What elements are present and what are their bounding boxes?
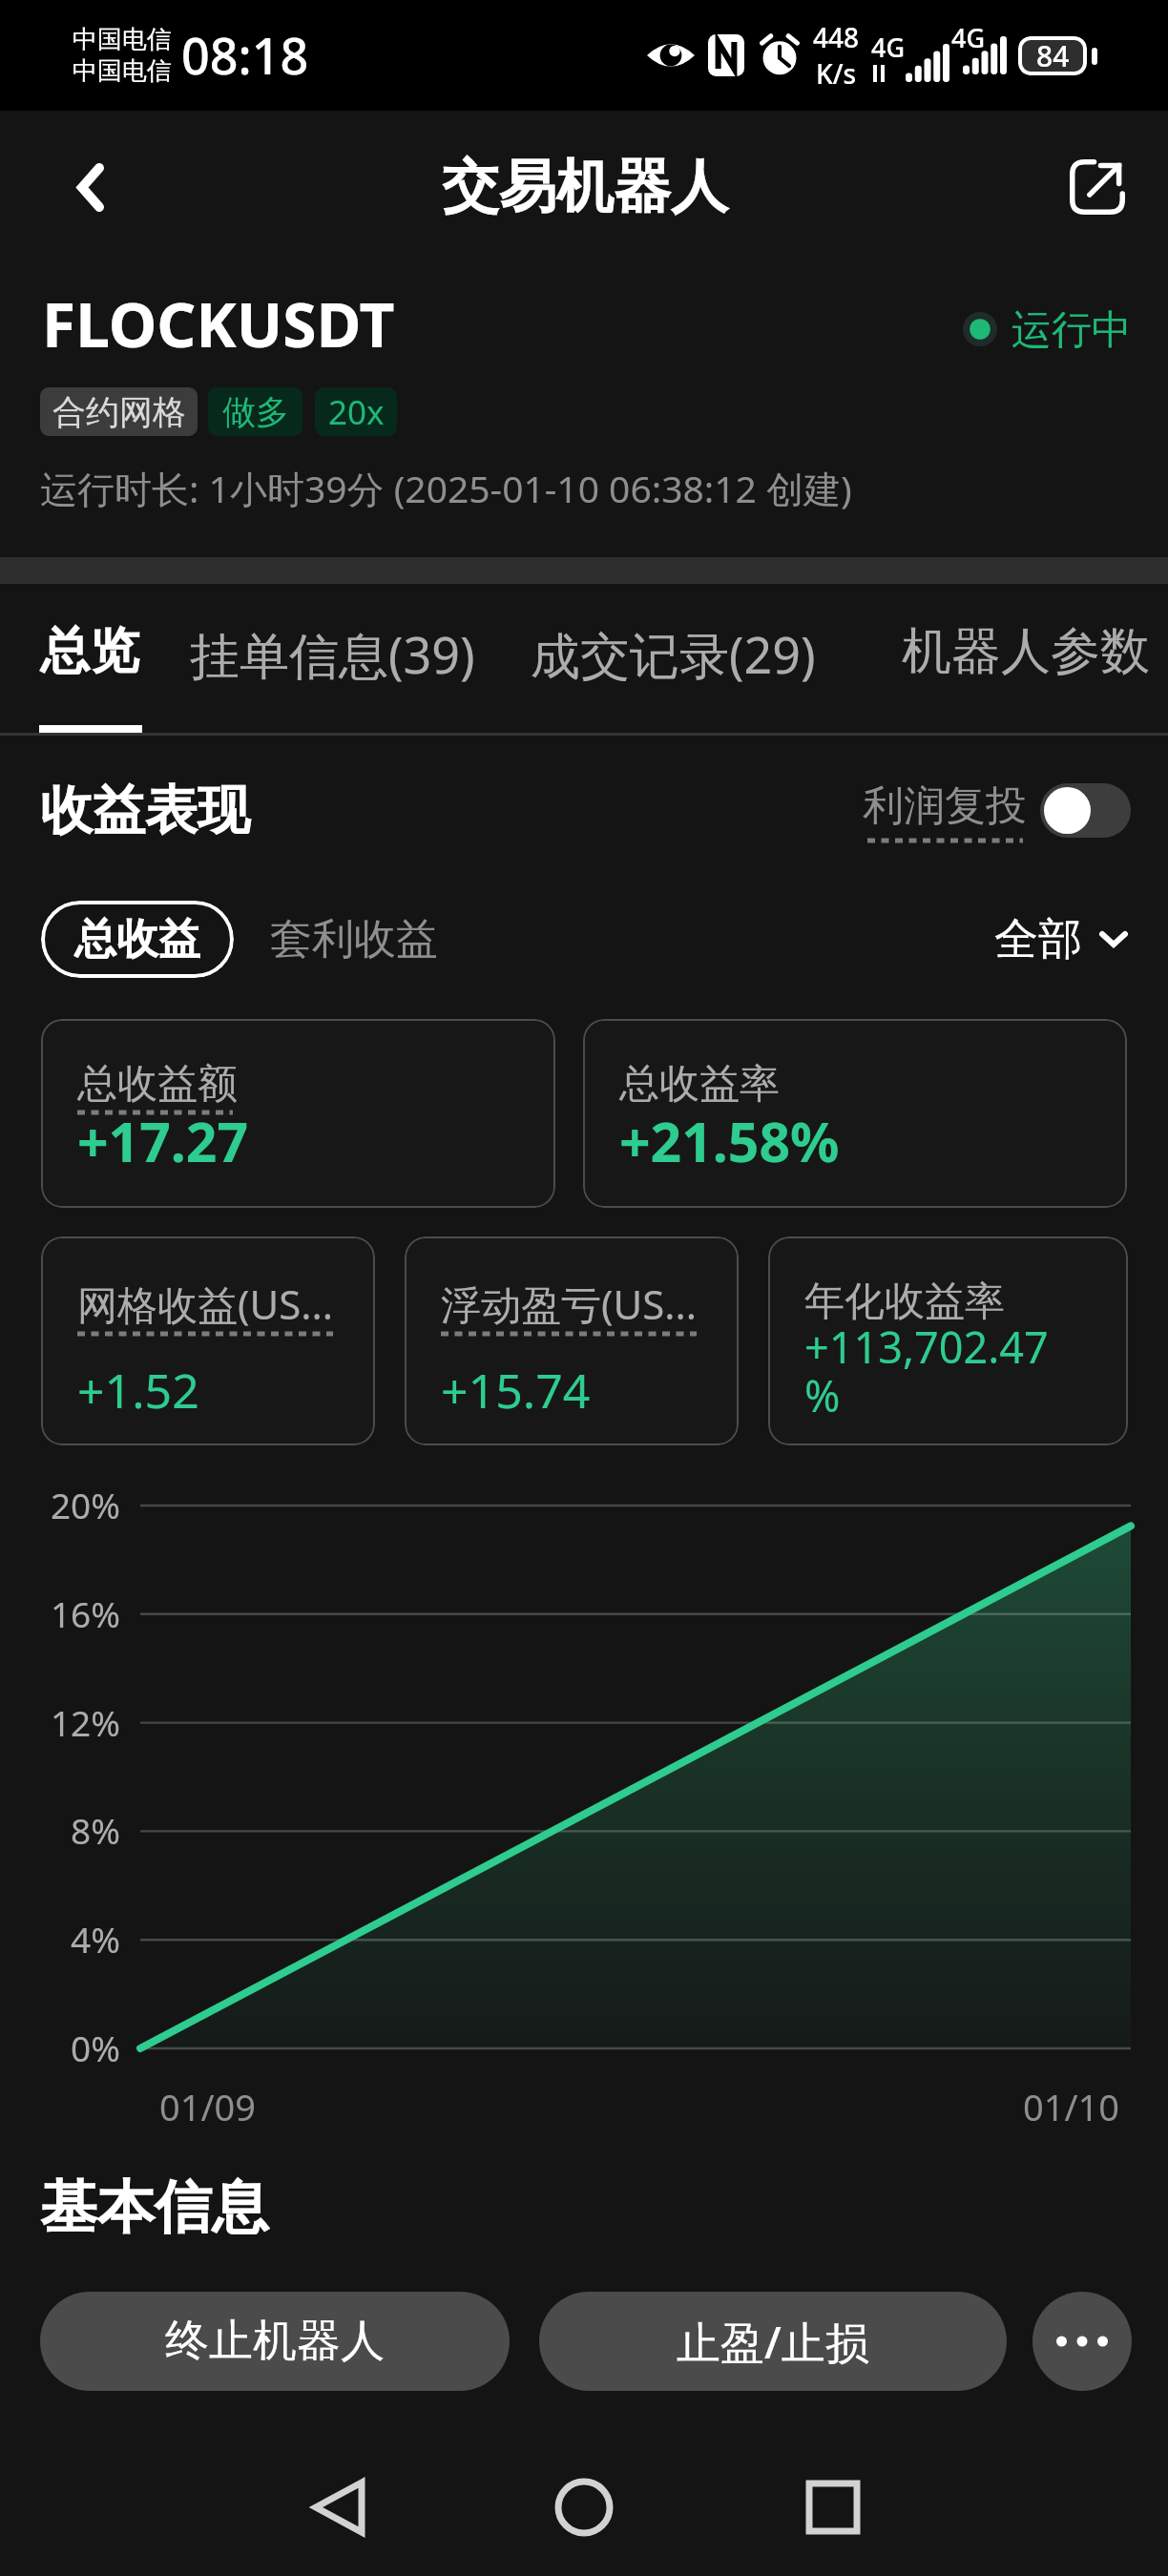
staticText: 总收益 [74, 913, 200, 966]
staticText: 12% [50, 1698, 120, 1746]
staticText: 运行时长: 1小时39分 (2025-01-10 06:38:12 创建) [40, 463, 852, 513]
staticText: 01/10 [1023, 2082, 1120, 2131]
staticText: 总收益率 [619, 1059, 780, 1110]
staticText: 交易机器人 [442, 151, 728, 223]
button[interactable]: Home [527, 2450, 641, 2565]
button[interactable]: More options [1032, 2292, 1132, 2391]
button[interactable]: 全部 [983, 901, 1139, 978]
staticText: 年化收益率 [804, 1277, 1005, 1327]
button[interactable]: 机器人参数 [879, 611, 1168, 693]
button[interactable]: 成交记录(29) [508, 611, 839, 697]
staticText: 终止机器人 [165, 2314, 385, 2369]
staticText: 收益表现 [40, 778, 250, 843]
staticText: +113,702.47% [804, 1318, 1062, 1424]
staticText: K/s [816, 55, 857, 92]
staticText: 8% [71, 1806, 120, 1854]
staticText: 止盈/止损 [677, 2312, 869, 2372]
button[interactable]: 总览 [17, 611, 162, 693]
staticText: +21.58% [619, 1104, 1117, 1178]
staticText: 网格收益(US... [77, 1277, 334, 1331]
button[interactable]: 网格收益(US... [41, 1236, 375, 1445]
button[interactable]: 止盈/止损 [539, 2292, 1007, 2391]
staticText: 利润复投 [863, 780, 1027, 832]
staticText: 中国电信 [73, 55, 172, 87]
staticText: 成交记录(29) [531, 620, 816, 688]
button[interactable]: 浮动盈亏(US... [405, 1236, 739, 1445]
button[interactable]: 挂单信息(39) [167, 611, 498, 697]
staticText: 01/09 [159, 2082, 257, 2131]
button[interactable]: Back [50, 146, 132, 228]
staticText: 4G [951, 20, 986, 55]
button[interactable]: 年化收益率 [768, 1236, 1128, 1445]
button[interactable]: Reinvest profit toggle [1040, 783, 1131, 838]
staticText: 20% [50, 1481, 120, 1528]
staticText: 0% [71, 2024, 120, 2071]
staticText: FLOCKUSDT [42, 282, 395, 365]
staticText: 浮动盈亏(US... [441, 1277, 698, 1331]
button[interactable]: 套利收益 [253, 901, 455, 978]
button[interactable]: 总收益率 [583, 1019, 1127, 1208]
staticText: 16% [50, 1589, 120, 1637]
staticText: 08:18 [181, 21, 309, 89]
staticText: 套利收益 [270, 913, 438, 966]
staticText: 4% [71, 1915, 120, 1963]
button[interactable]: Recents [776, 2450, 890, 2565]
button[interactable]: Share [1054, 144, 1140, 230]
staticText: 运行中 [1012, 305, 1132, 356]
staticText: 做多 [222, 391, 289, 433]
staticText: 20x [328, 389, 385, 435]
button[interactable]: Back [282, 2450, 396, 2565]
staticText: 挂单信息(39) [190, 620, 475, 688]
staticText: 84 [1036, 36, 1070, 75]
staticText: +1.52 [77, 1358, 365, 1423]
button[interactable]: 总收益额 [41, 1019, 555, 1208]
staticText: 总收益额 [77, 1059, 238, 1110]
staticText: 合约网格 [52, 391, 186, 433]
staticText: 全部 [994, 912, 1082, 967]
staticText: 4G [871, 30, 906, 65]
button[interactable]: 总收益 [41, 901, 234, 978]
staticText: 总览 [40, 620, 139, 683]
staticText: +17.27 [77, 1104, 546, 1178]
staticText: 中国电信 [73, 24, 172, 55]
staticText: 448 [813, 19, 860, 55]
button[interactable]: 终止机器人 [40, 2292, 510, 2391]
staticText: 机器人参数 [902, 620, 1150, 683]
staticText: 基本信息 [40, 2171, 269, 2244]
staticText: +15.74 [441, 1358, 729, 1423]
